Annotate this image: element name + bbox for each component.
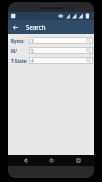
staticText: Search: [26, 23, 46, 31]
staticText: Bytes:: [11, 38, 25, 44]
button[interactable]: Back: [15, 155, 35, 166]
button[interactable]: Recent apps: [68, 155, 88, 166]
button[interactable]: Search: [84, 47, 92, 54]
button[interactable]: Back: [8, 20, 22, 34]
staticText: 3: [31, 38, 34, 44]
button[interactable]: Search: [84, 37, 92, 44]
staticText: 5: [31, 48, 34, 54]
button[interactable]: 4: [29, 57, 93, 64]
staticText: T-State:: [11, 58, 28, 64]
staticText: M/Cycle:: [11, 48, 29, 54]
button[interactable]: Home: [41, 155, 61, 166]
button[interactable]: 5: [29, 47, 93, 54]
button[interactable]: 3: [29, 37, 93, 44]
staticText: 4: [31, 58, 34, 64]
button[interactable]: Search: [84, 57, 92, 64]
